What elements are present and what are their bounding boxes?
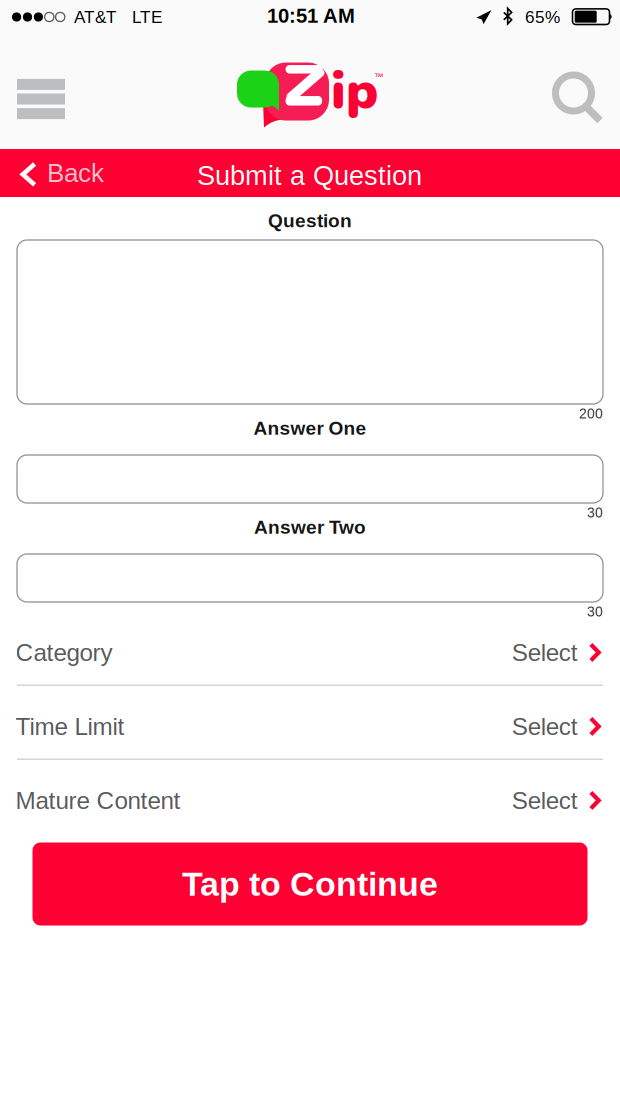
staticText: Category bbox=[15, 639, 112, 666]
staticText: Select bbox=[512, 639, 578, 666]
staticText: AT&T bbox=[74, 7, 117, 27]
staticText: Back bbox=[47, 158, 104, 187]
staticText: Submit a Question bbox=[197, 160, 422, 191]
staticText: 65% bbox=[525, 7, 560, 27]
staticText: Select bbox=[512, 787, 578, 814]
button[interactable]: Answer two text field bbox=[17, 554, 603, 602]
staticText: 10:51 AM bbox=[267, 4, 355, 27]
button[interactable]: Search bbox=[538, 57, 620, 141]
button[interactable]: Menu bbox=[0, 57, 82, 141]
staticText: Tap to Continue bbox=[182, 865, 438, 903]
button[interactable]: Time Limit bbox=[17, 694, 603, 758]
button[interactable]: Category bbox=[17, 620, 603, 684]
staticText: Answer Two bbox=[254, 516, 366, 538]
button[interactable]: Answer one text field bbox=[17, 455, 603, 503]
staticText: 30 bbox=[587, 604, 603, 619]
staticText: Mature Content bbox=[15, 787, 180, 814]
staticText: ™ bbox=[374, 71, 383, 82]
staticText: 30 bbox=[587, 505, 603, 520]
button[interactable]: Question text field bbox=[17, 240, 603, 404]
button[interactable]: Tap to Continue bbox=[32, 842, 587, 925]
staticText: Answer One bbox=[253, 417, 366, 439]
staticText: 200 bbox=[579, 406, 603, 421]
staticText: Question bbox=[268, 210, 352, 231]
staticText: Select bbox=[512, 713, 578, 740]
button[interactable]: Back bbox=[0, 149, 120, 197]
staticText: LTE bbox=[132, 7, 162, 27]
staticText: Time Limit bbox=[15, 713, 124, 740]
button[interactable]: Mature Content bbox=[17, 768, 603, 832]
staticText: ip bbox=[331, 55, 378, 126]
